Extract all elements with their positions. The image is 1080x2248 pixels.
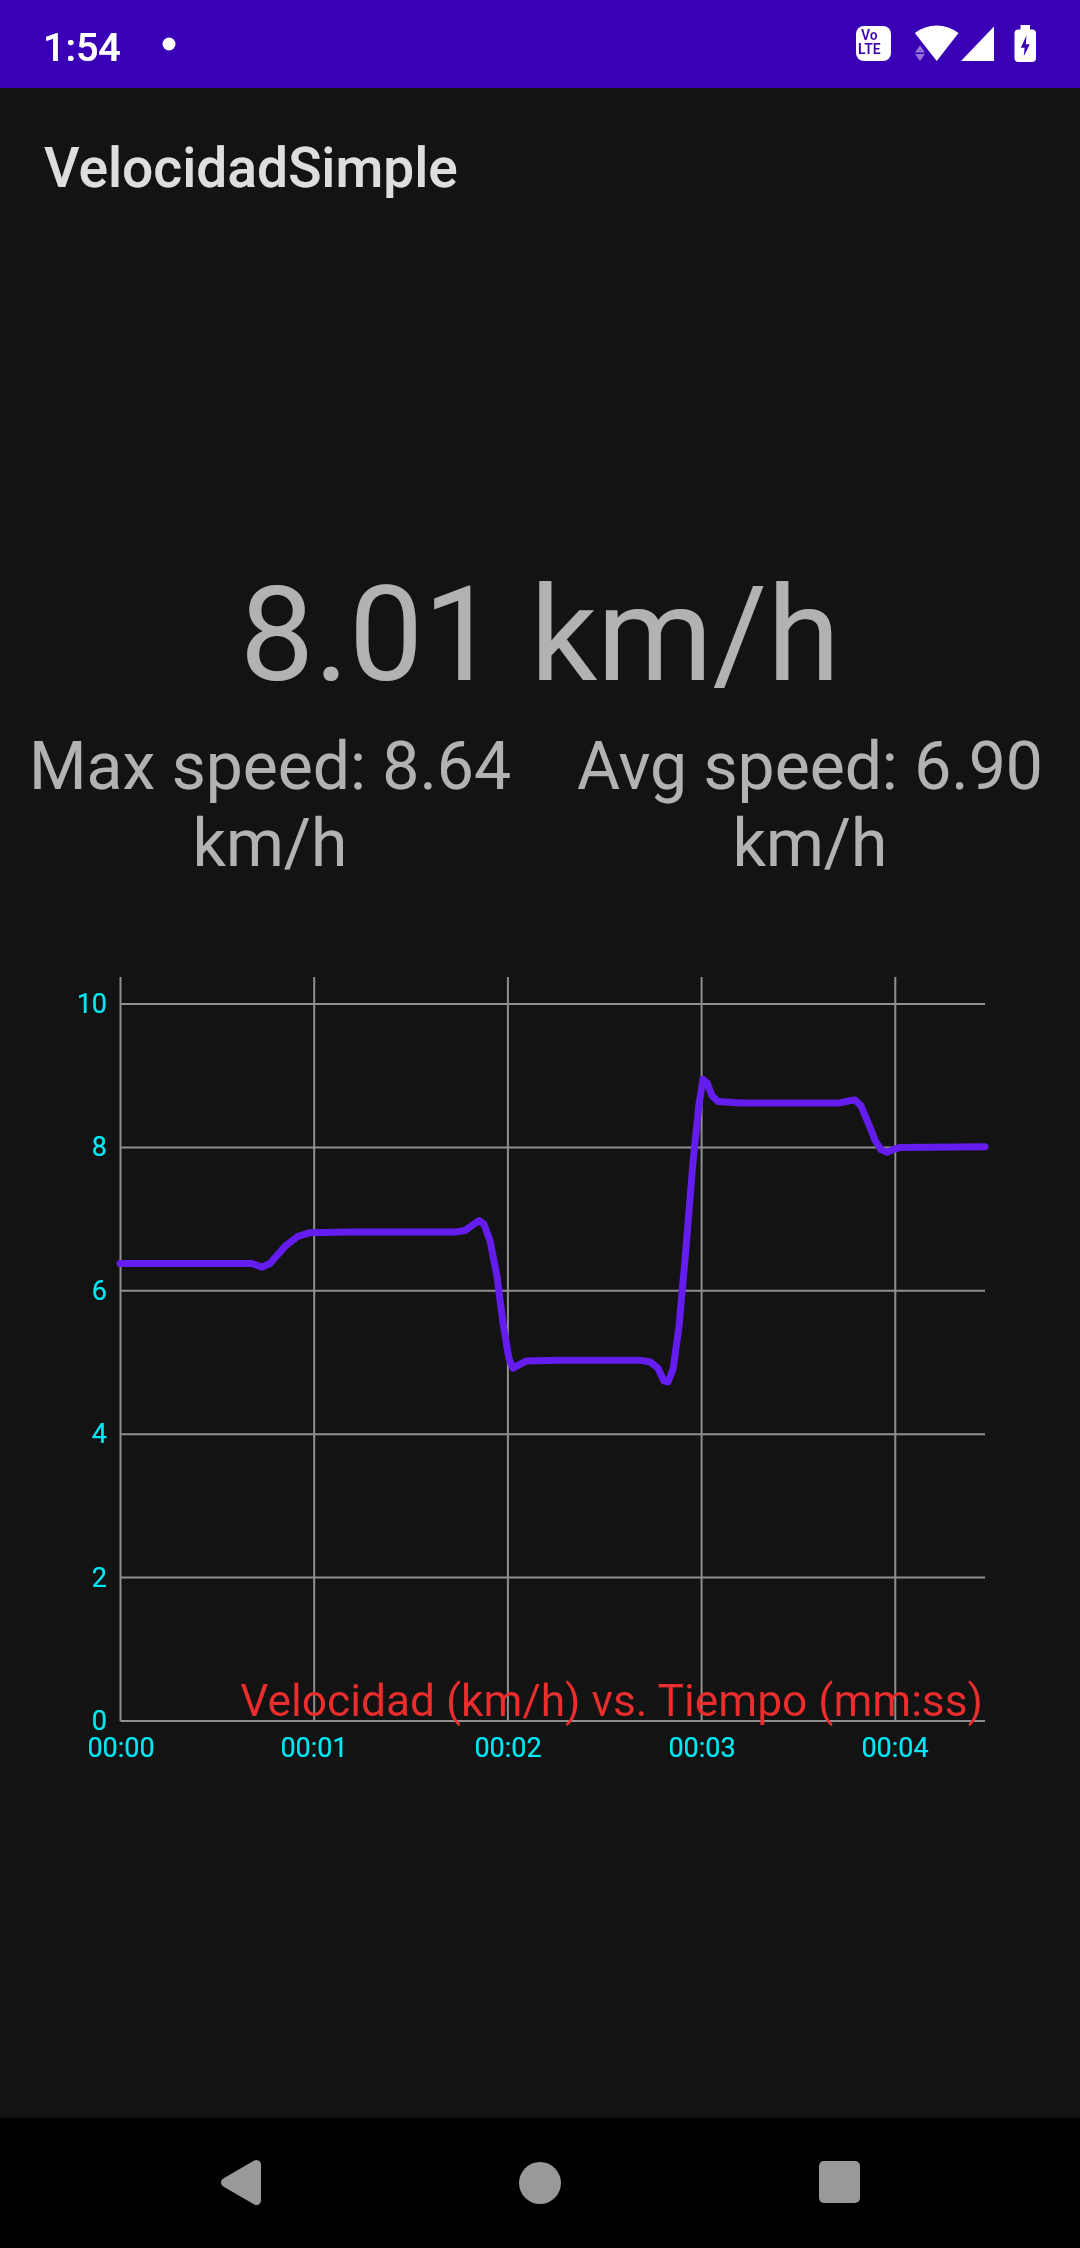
staticText: 00:02 bbox=[428, 1732, 588, 1764]
staticText: Avg speed: 6.90 km/h bbox=[540, 728, 1080, 882]
staticText: 1:54 bbox=[43, 24, 121, 70]
button[interactable] bbox=[490, 2132, 590, 2232]
staticText: LTE bbox=[858, 41, 881, 57]
staticText: 0 bbox=[0, 1705, 107, 1737]
button[interactable] bbox=[191, 2132, 291, 2232]
staticText: VelocidadSimple bbox=[44, 136, 458, 200]
staticText: Velocidad (km/h) vs. Tiempo (mm:ss) bbox=[0, 1675, 983, 1727]
staticText: 8.01 km/h bbox=[0, 558, 1080, 713]
staticText: Max speed: 8.64 km/h bbox=[0, 728, 540, 882]
staticText: 6 bbox=[0, 1275, 107, 1307]
staticText: 4 bbox=[0, 1418, 107, 1450]
button[interactable] bbox=[789, 2132, 889, 2232]
staticText: 00:03 bbox=[622, 1732, 782, 1764]
staticText: 8 bbox=[0, 1131, 107, 1163]
staticText: 10 bbox=[0, 988, 107, 1020]
staticText: 00:01 bbox=[234, 1732, 394, 1764]
staticText: 00:00 bbox=[41, 1732, 201, 1764]
staticText: Vo bbox=[861, 27, 878, 43]
staticText: 00:04 bbox=[815, 1732, 975, 1764]
staticText: 2 bbox=[0, 1562, 107, 1594]
